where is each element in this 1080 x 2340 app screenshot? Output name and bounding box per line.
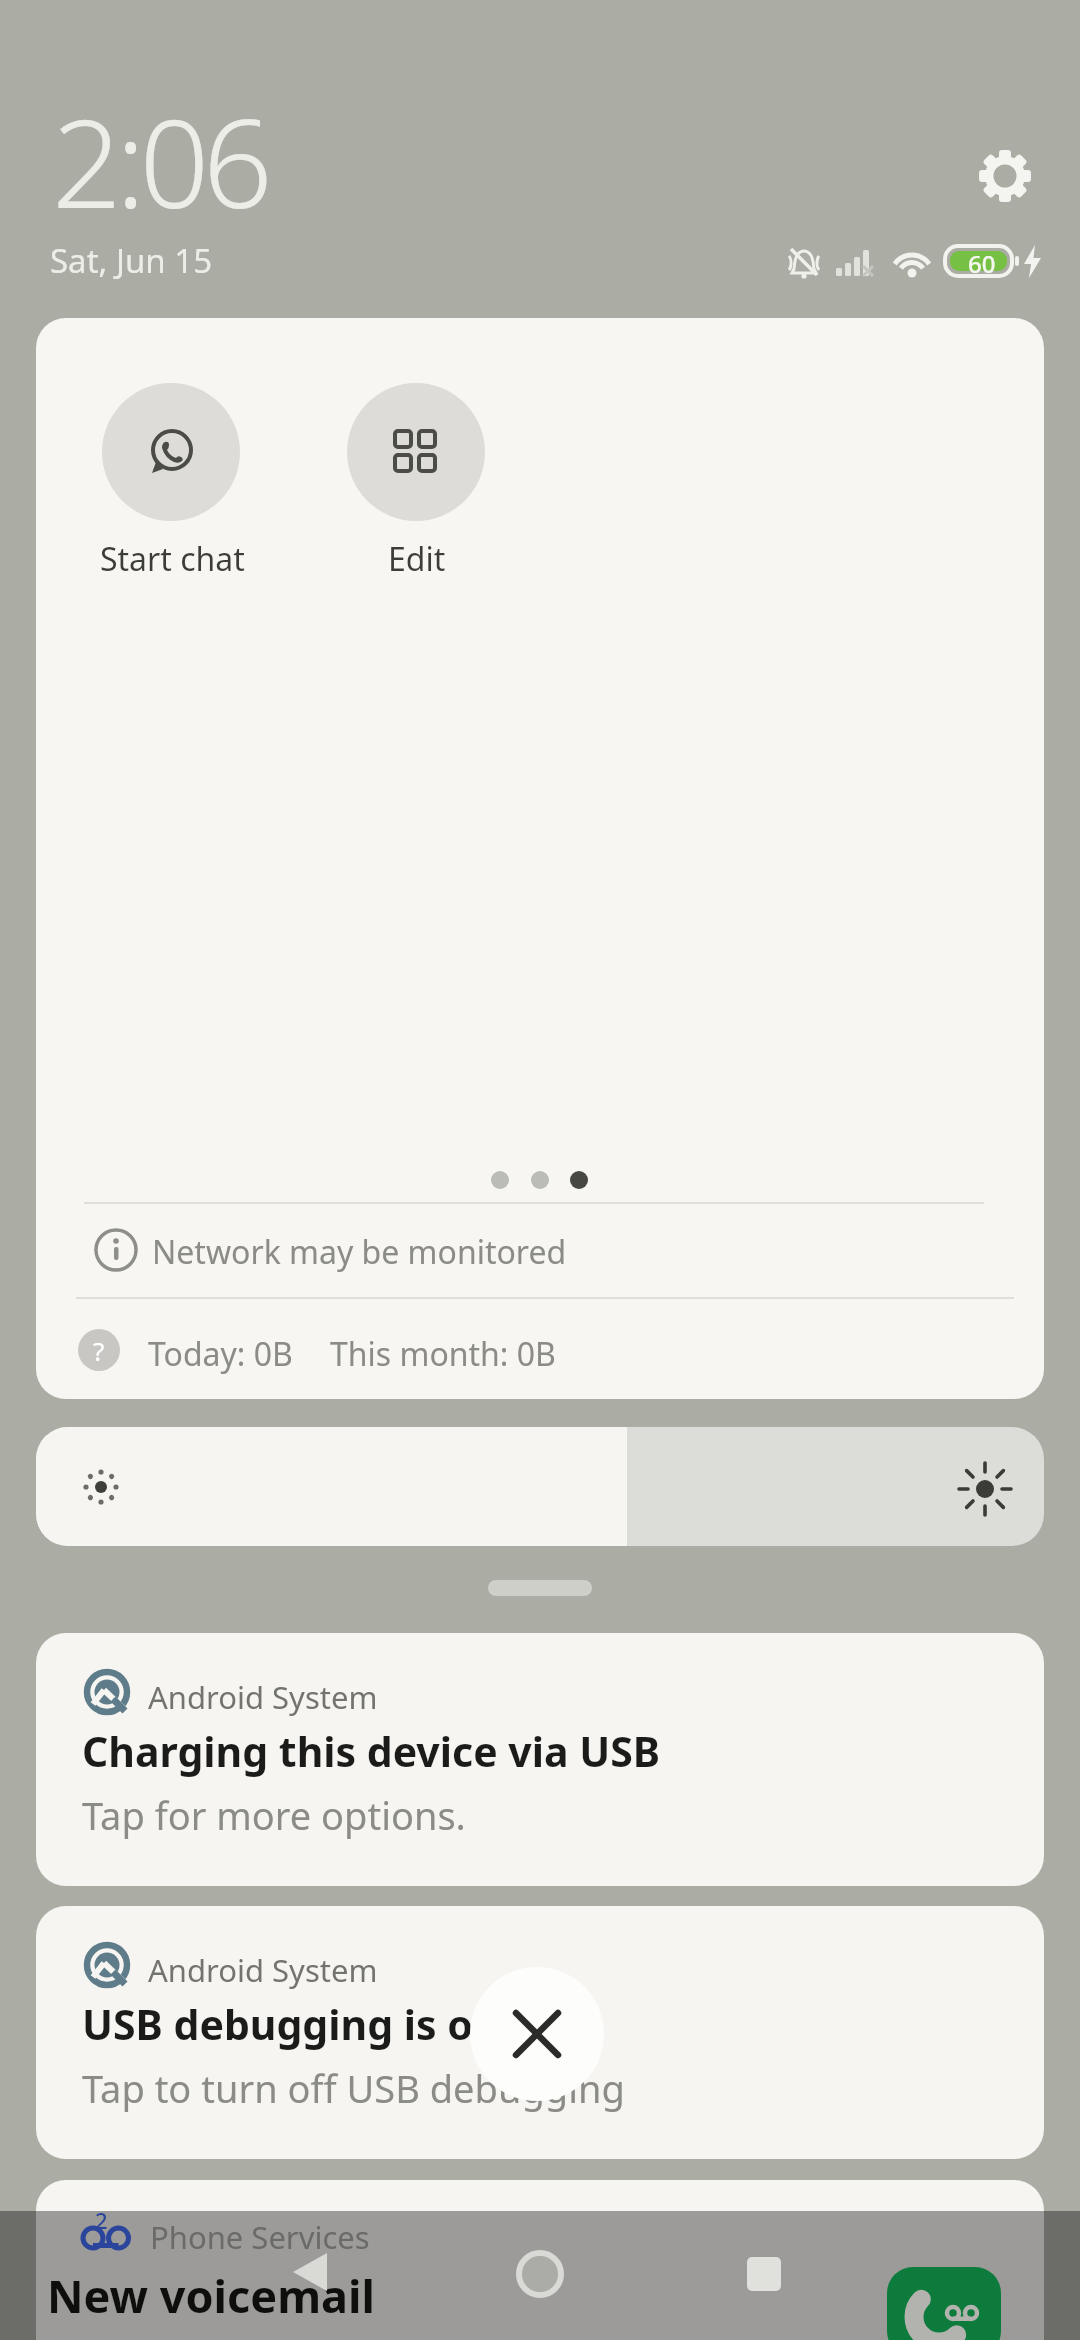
button[interactable] (510, 2244, 570, 2304)
staticText: USB debugging is on (82, 1996, 500, 2052)
button[interactable]: Android System (36, 1906, 1044, 2159)
staticText: New voicemail (47, 2265, 375, 2326)
button[interactable] (102, 383, 240, 521)
staticText: Android System (148, 1676, 378, 1718)
staticText: Today: 0B (148, 1332, 293, 1376)
button[interactable]: Android System (36, 1633, 1044, 1886)
staticText: ? (93, 1333, 105, 1368)
staticText: Network may be monitored (152, 1230, 567, 1274)
button[interactable]: Start chat (72, 537, 272, 581)
staticText: This month: 0B (330, 1332, 556, 1376)
button[interactable] (470, 1967, 604, 2101)
button[interactable] (734, 2244, 794, 2304)
button[interactable] (36, 1427, 1044, 1546)
staticText: 60 (968, 247, 996, 280)
button[interactable]: Network may be monitored (76, 1208, 1006, 1292)
staticText: Charging this device via USB (82, 1723, 661, 1779)
staticText: Android System (148, 1949, 378, 1991)
staticText: Tap to turn off USB debugging (82, 2062, 625, 2114)
staticText: Tap for more options. (82, 1789, 466, 1841)
staticText: 2:06 (52, 78, 267, 244)
staticText: 2 (95, 2205, 108, 2235)
button[interactable] (280, 2242, 340, 2302)
button[interactable]: Edit (317, 537, 517, 581)
staticText: Start chat (100, 537, 245, 581)
button[interactable] (347, 383, 485, 521)
button[interactable] (975, 146, 1035, 206)
staticText: Phone Services (150, 2216, 370, 2258)
staticText: Sat, Jun 15 (50, 238, 213, 283)
staticText: Edit (388, 537, 446, 581)
button[interactable] (887, 2267, 1001, 2340)
